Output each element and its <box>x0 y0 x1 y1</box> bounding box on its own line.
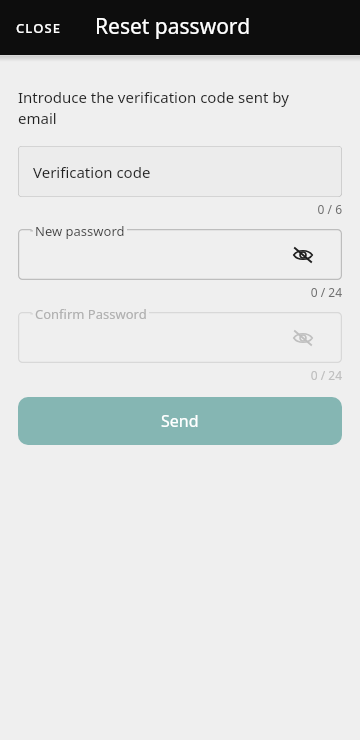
button[interactable]: Show password <box>18 221 342 280</box>
button[interactable]: Show password <box>290 242 316 268</box>
button[interactable]: Show password <box>18 304 342 363</box>
staticText: Send <box>161 410 199 432</box>
staticText: Introduce the verification code sent by … <box>18 87 326 129</box>
staticText: Confirm Password <box>35 305 147 323</box>
staticText: Verification code <box>33 162 151 182</box>
button[interactable]: Verification code <box>18 146 342 197</box>
staticText: Reset password <box>95 12 251 41</box>
staticText: 0 / 24 <box>310 284 342 300</box>
button[interactable]: CLOSE <box>8 13 70 43</box>
staticText: New password <box>35 222 125 240</box>
button[interactable]: Send <box>18 397 342 445</box>
staticText: CLOSE <box>16 19 62 37</box>
staticText: 0 / 6 <box>317 201 342 217</box>
button[interactable]: Show password <box>290 325 316 351</box>
staticText: 0 / 24 <box>310 367 342 383</box>
